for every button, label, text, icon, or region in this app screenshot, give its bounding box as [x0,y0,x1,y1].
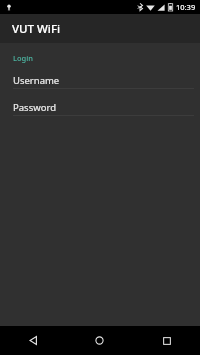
staticText: 10:39 [176,2,196,12]
staticText: Password [13,101,56,114]
button[interactable]: Username [0,73,200,88]
button[interactable]: Home [66,326,133,355]
staticText: Login [13,53,33,63]
button[interactable]: Recent apps [133,326,200,355]
button[interactable]: Login [0,52,200,64]
button[interactable]: Password [0,100,200,115]
staticText: Username [13,74,60,87]
staticText: VUT WiFi [12,21,61,37]
button[interactable]: Back [0,326,66,355]
